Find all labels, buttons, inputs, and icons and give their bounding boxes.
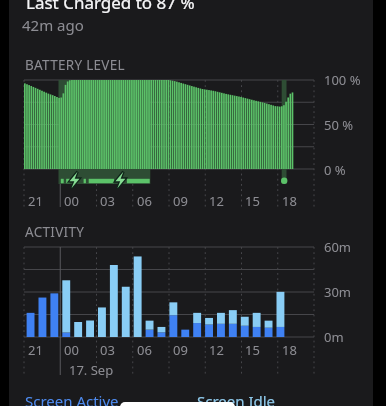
staticText: 03 <box>100 341 115 359</box>
staticText: 60m <box>324 238 352 256</box>
staticText: Screen Active <box>25 391 119 406</box>
staticText: 06 <box>137 341 152 359</box>
staticText: 06 <box>137 192 152 210</box>
staticText: ACTIVITY <box>25 223 85 241</box>
staticText: BATTERY LEVEL <box>25 56 125 74</box>
staticText: 09 <box>173 341 188 359</box>
staticText: 12 <box>209 192 224 210</box>
staticText: 00 <box>64 192 79 210</box>
staticText: Screen Idle <box>197 391 276 406</box>
staticText: 12 <box>209 341 224 359</box>
staticText: 21 <box>28 192 43 210</box>
staticText: 15 <box>245 192 260 210</box>
staticText: 18 <box>282 192 297 210</box>
staticText: 00 <box>64 341 79 359</box>
staticText: 30m <box>324 283 352 301</box>
staticText: 21 <box>28 341 43 359</box>
staticText: 09 <box>173 192 188 210</box>
staticText: 15 <box>245 341 260 359</box>
staticText: 0m <box>324 328 344 346</box>
staticText: 0 % <box>324 161 346 179</box>
staticText: Last Charged to 87 % <box>26 0 195 14</box>
staticText: 18 <box>282 341 297 359</box>
staticText: 03 <box>100 192 115 210</box>
staticText: 50 % <box>324 116 354 134</box>
staticText: 100 % <box>324 71 361 89</box>
staticText: 17. Sep <box>69 361 114 379</box>
staticText: 42m ago <box>22 15 84 35</box>
